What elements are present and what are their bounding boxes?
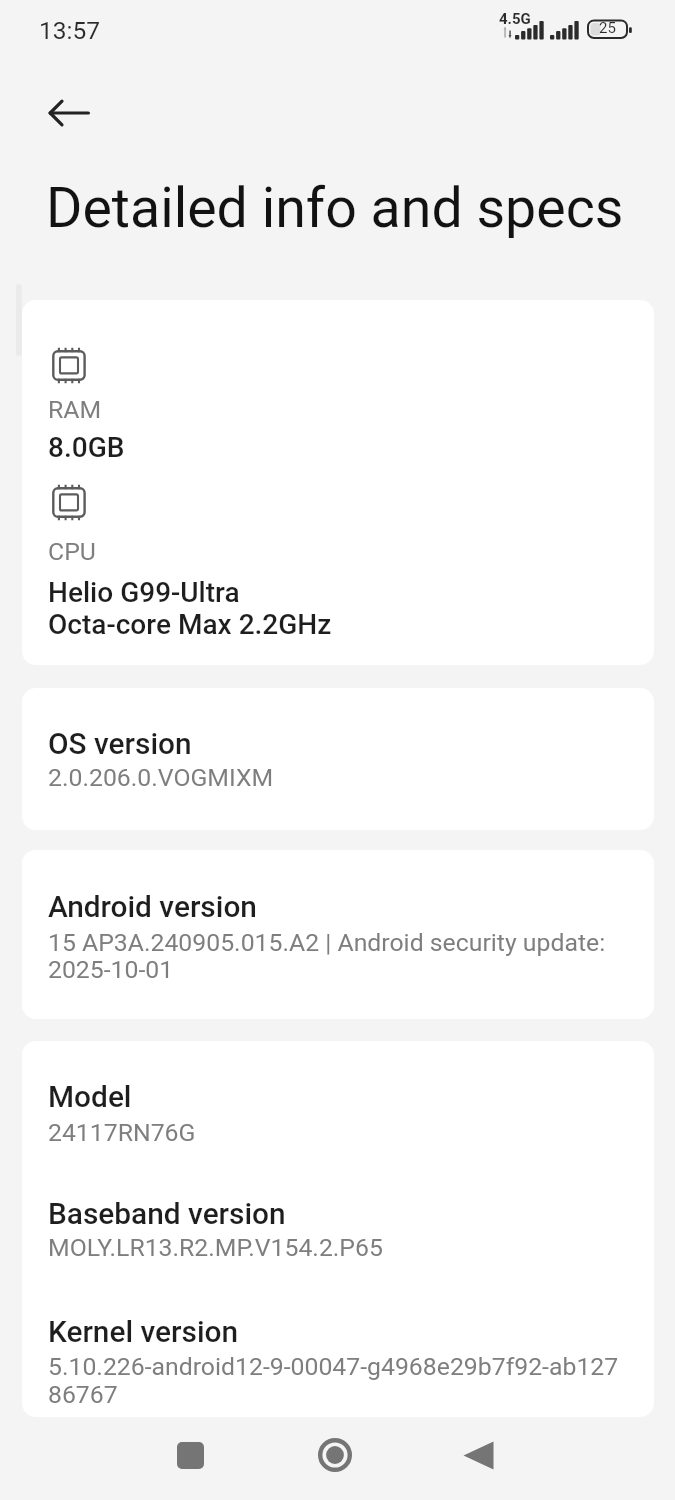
- staticText: OS version: [48, 726, 192, 761]
- button[interactable]: Model: [22, 1041, 654, 1417]
- staticText: 15 AP3A.240905.015.A2 | Android security…: [48, 928, 606, 984]
- staticText: 4.5G: [499, 10, 531, 28]
- button[interactable]: OS version: [22, 688, 654, 830]
- staticText: CPU: [48, 537, 96, 566]
- staticText: Model: [48, 1079, 132, 1114]
- staticText: MOLY.LR13.R2.MP.V154.2.P65: [48, 1233, 383, 1262]
- staticText: 5.10.226-android12-9-00047-g4968e29b7f92…: [48, 1352, 619, 1409]
- staticText: 24117RN76G: [48, 1118, 196, 1147]
- staticText: Helio G99-Ultra Octa-core Max 2.2GHz: [48, 576, 332, 641]
- staticText: Kernel version: [48, 1314, 239, 1349]
- staticText: 25: [599, 19, 616, 37]
- staticText: 2.0.206.0.VOGMIXM: [48, 763, 274, 792]
- button[interactable]: Recent apps: [145, 1415, 235, 1495]
- staticText: Baseband version: [48, 1196, 286, 1231]
- staticText: Android version: [48, 889, 257, 924]
- button[interactable]: Back: [433, 1415, 523, 1495]
- staticText: 13:57: [39, 16, 101, 45]
- button[interactable]: Back: [25, 81, 113, 145]
- button[interactable]: RAM: [22, 300, 654, 665]
- button[interactable]: Android version: [22, 850, 654, 1019]
- staticText: RAM: [48, 395, 102, 424]
- staticText: Detailed info and specs: [46, 176, 624, 241]
- staticText: 8.0GB: [48, 431, 125, 464]
- button[interactable]: Home: [290, 1415, 380, 1495]
